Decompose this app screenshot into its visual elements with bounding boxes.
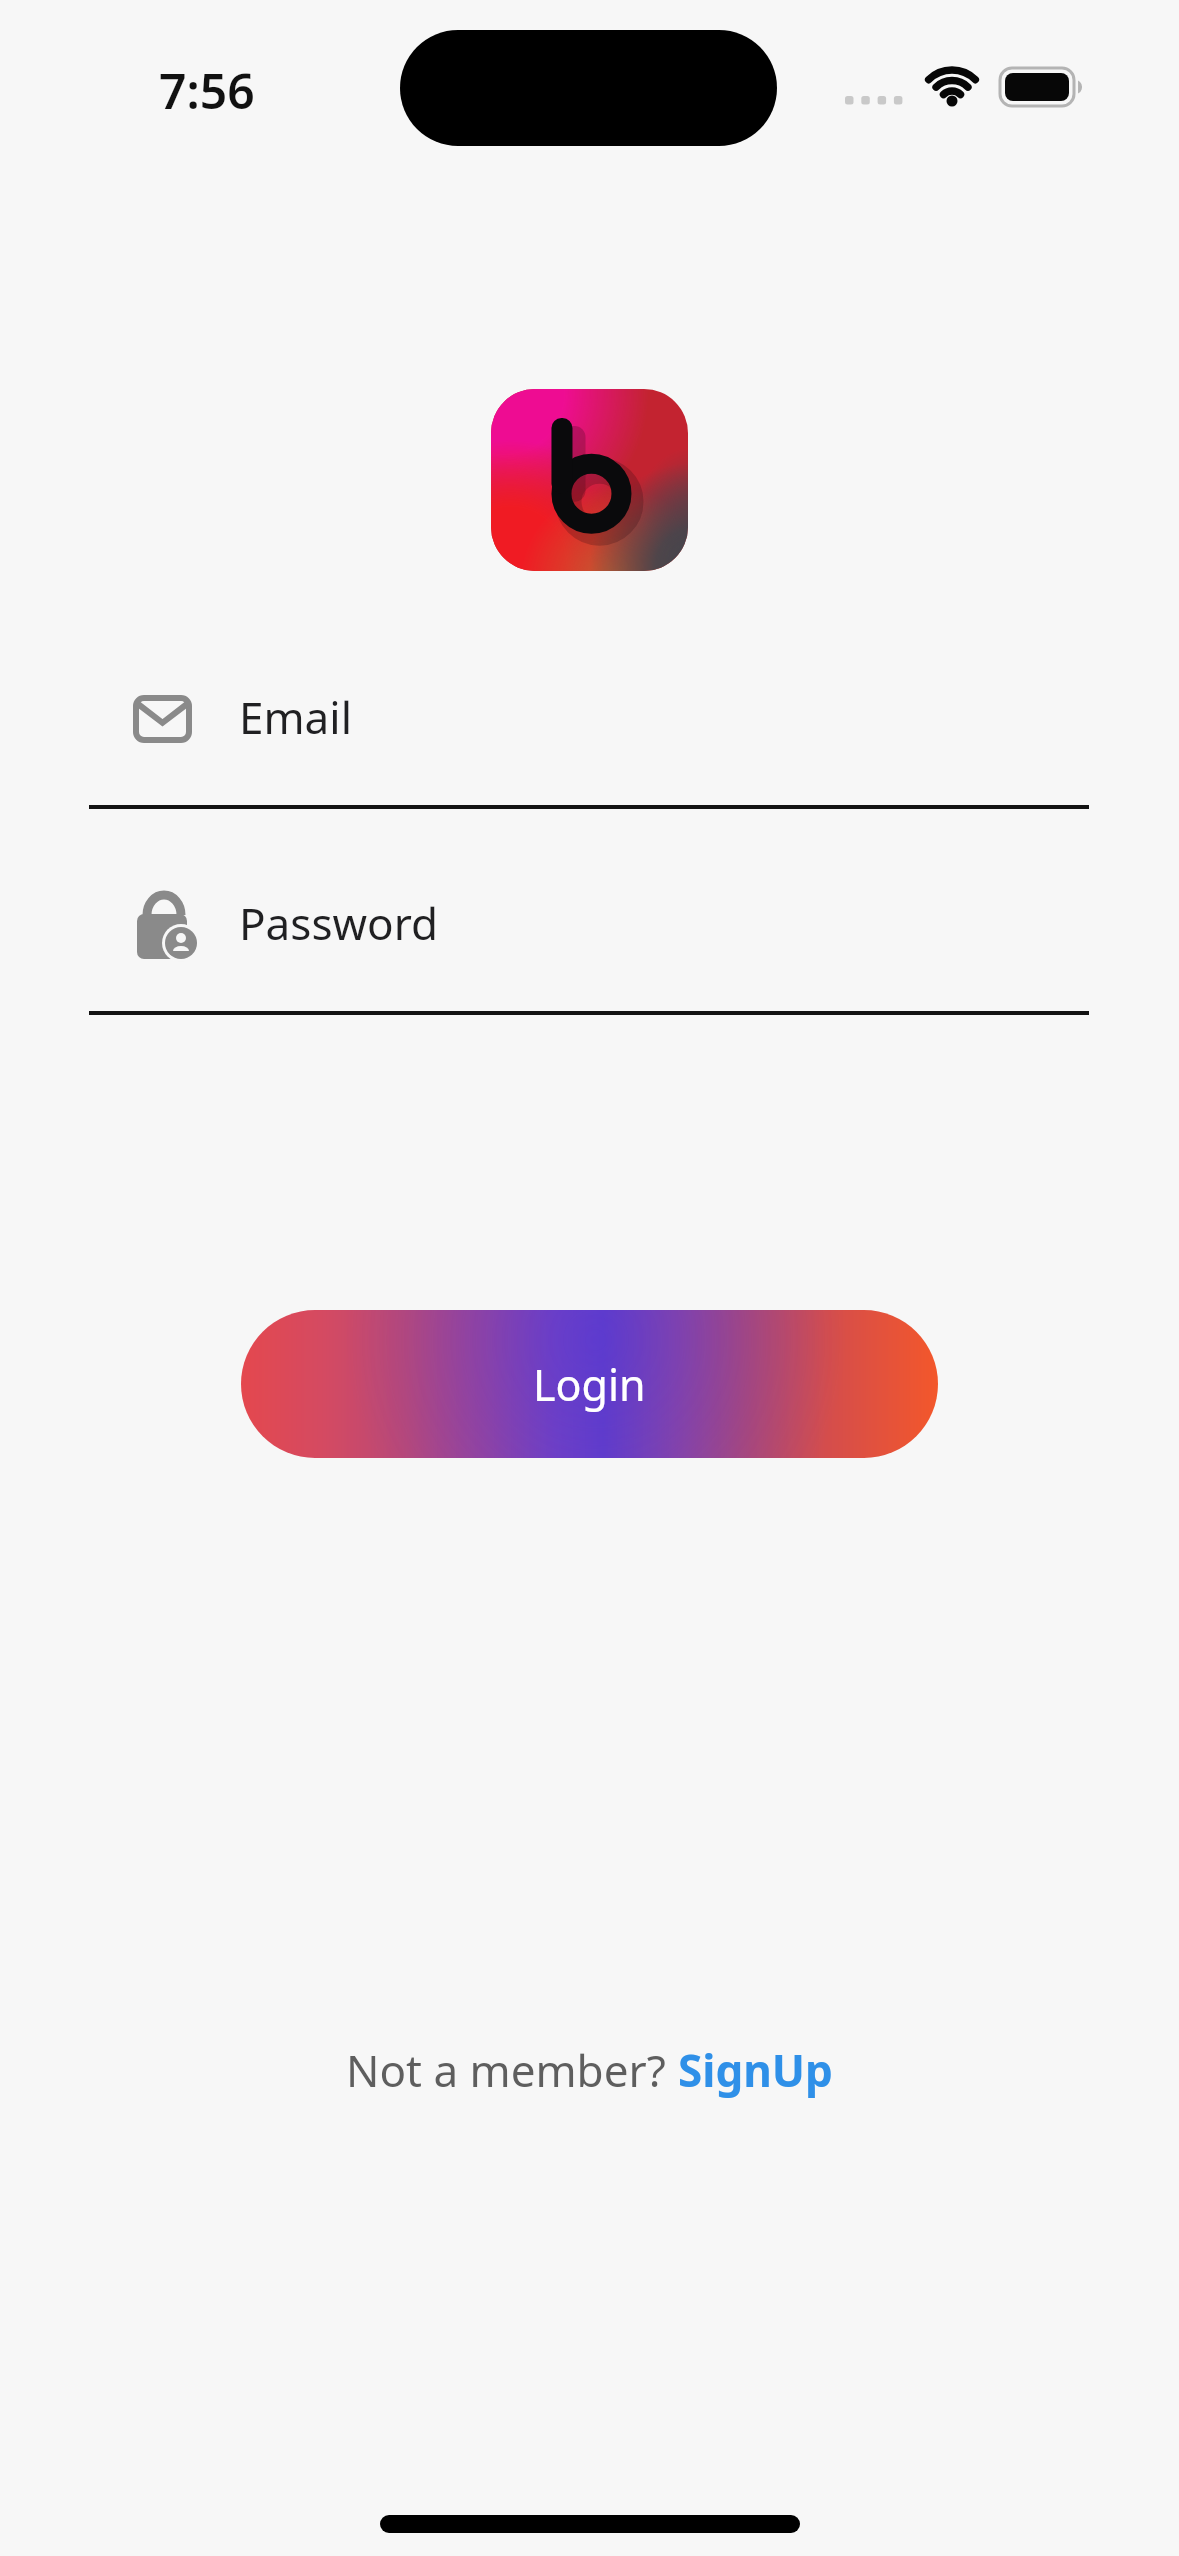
button[interactable]: Email <box>89 660 1089 805</box>
staticText: Email <box>239 687 352 747</box>
button[interactable]: SignUp <box>678 2040 833 2100</box>
staticText: Login <box>533 1355 646 1414</box>
button[interactable]: Password <box>89 865 1089 1010</box>
button[interactable]: Login <box>241 1310 938 1458</box>
staticText: 7:56 <box>159 58 255 123</box>
staticText: Password <box>239 893 439 953</box>
staticText: Not a member? <box>346 2040 678 2100</box>
